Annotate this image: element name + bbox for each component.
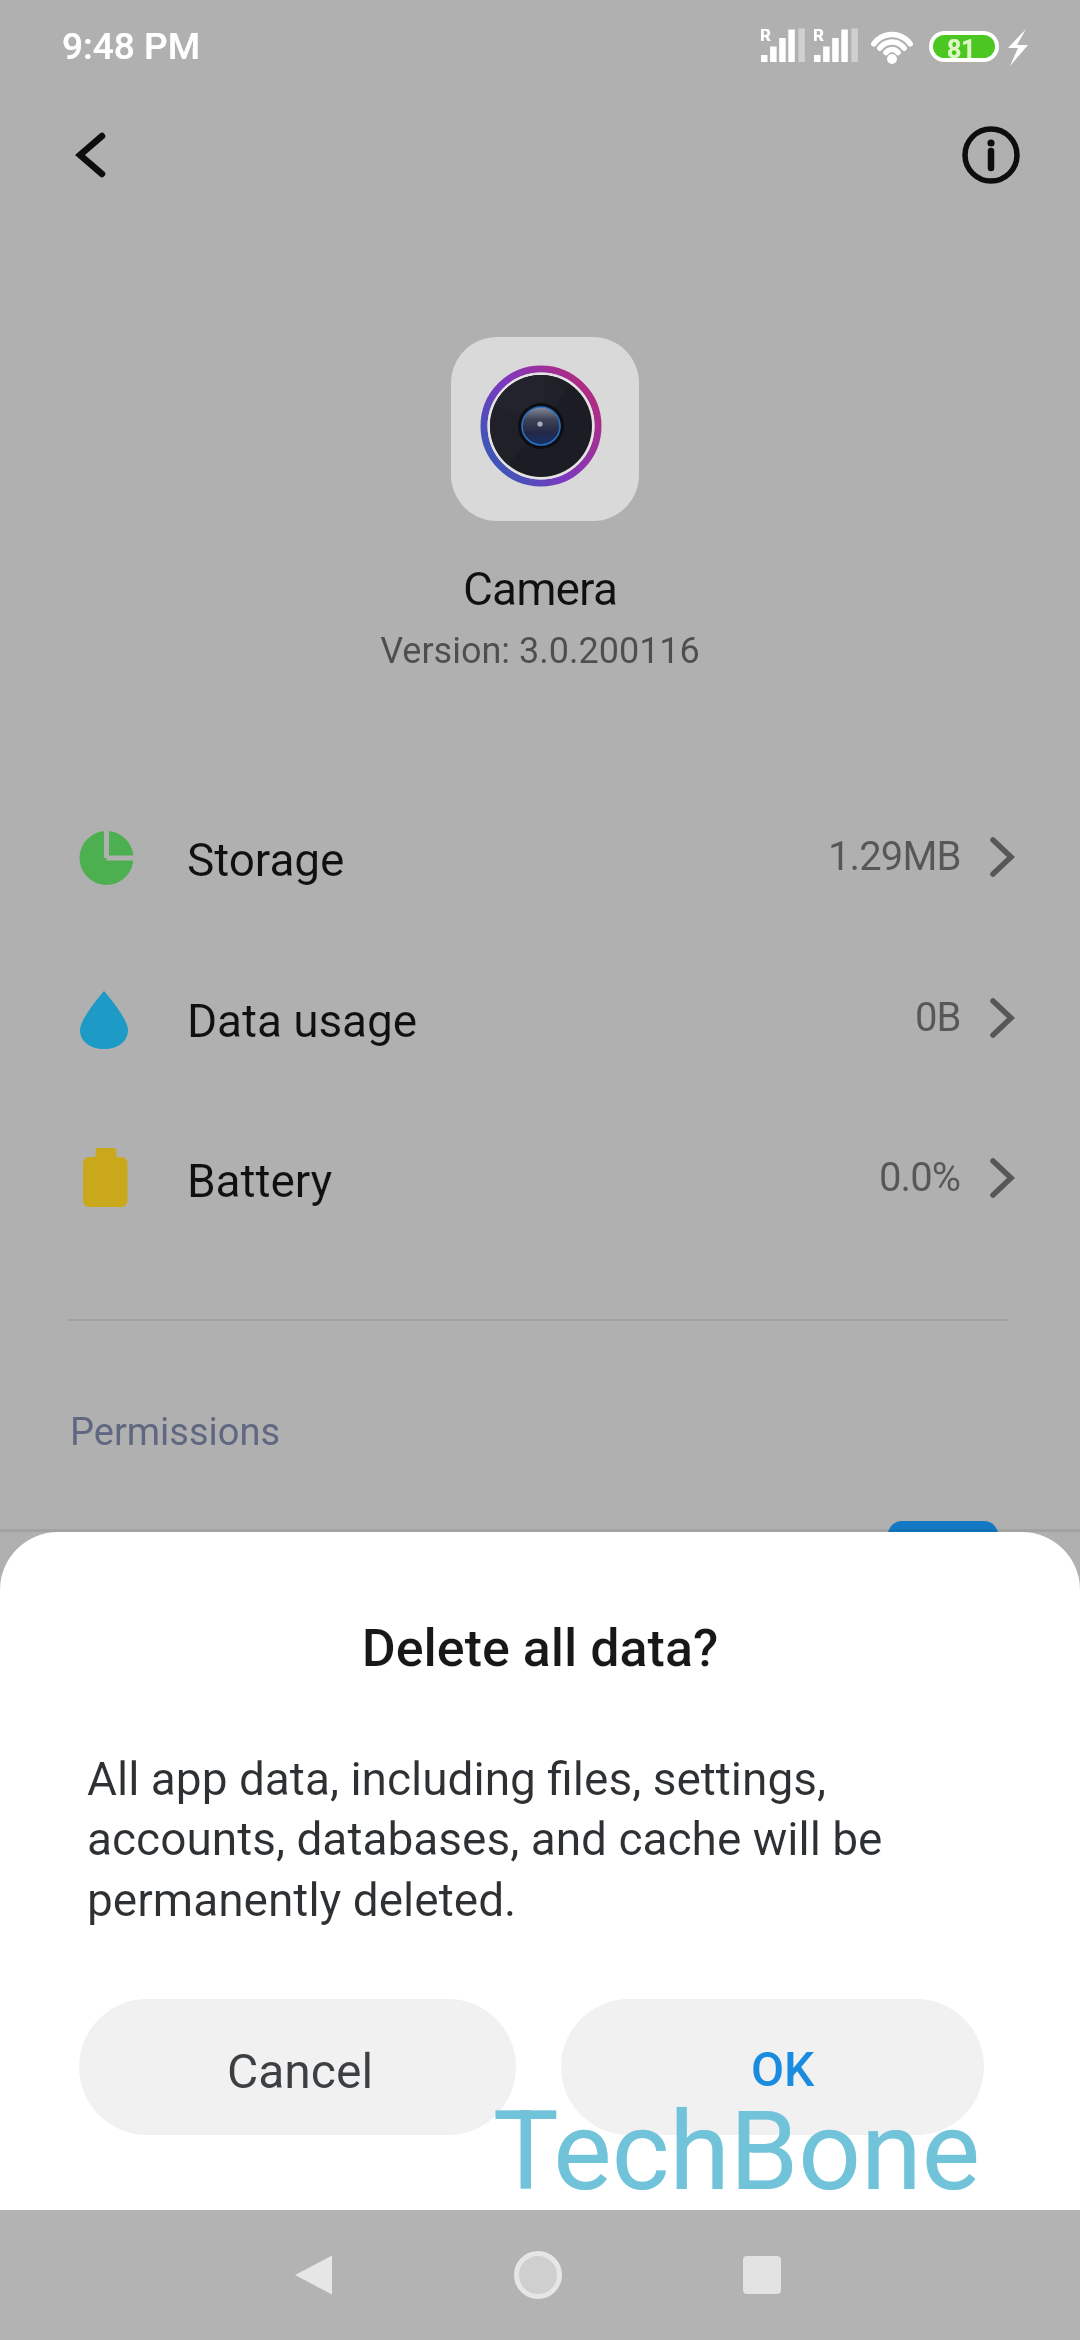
staticText: Delete all data? <box>0 1618 1080 1679</box>
staticText: 81 <box>947 35 976 58</box>
staticText: R <box>760 25 771 45</box>
staticText: R <box>813 25 824 45</box>
staticText: All app data, including files, settings,… <box>87 1752 927 1927</box>
staticText: Data usage <box>187 994 418 1048</box>
button[interactable]: Clear data <box>888 1521 998 1581</box>
staticText: TechBone <box>493 2087 981 2210</box>
button[interactable]: Home <box>478 2220 598 2330</box>
button[interactable]: Recents <box>702 2220 822 2330</box>
staticText: Permissions <box>70 1410 281 1455</box>
staticText: 1.29MB <box>828 833 961 880</box>
staticText: Cancel <box>227 2043 374 2099</box>
button[interactable]: Cancel <box>79 1999 516 2135</box>
staticText: Version: 3.0.200116 <box>0 630 1080 672</box>
staticText: Camera <box>0 562 1080 616</box>
button[interactable]: Back <box>254 2220 374 2330</box>
button[interactable]: Storage <box>0 780 1080 940</box>
staticText: 9:48 PM <box>62 25 201 68</box>
staticText: OK <box>751 2041 815 2097</box>
button[interactable]: Data usage <box>0 941 1080 1101</box>
staticText: Battery <box>187 1154 333 1208</box>
button[interactable]: Battery <box>0 1101 1080 1261</box>
button[interactable]: OK <box>561 1999 984 2135</box>
staticText: 0B <box>915 994 961 1041</box>
staticText: 0.0% <box>879 1154 961 1201</box>
button[interactable]: Back <box>30 100 140 210</box>
button[interactable]: App info <box>936 100 1046 210</box>
staticText: Storage <box>187 833 345 887</box>
